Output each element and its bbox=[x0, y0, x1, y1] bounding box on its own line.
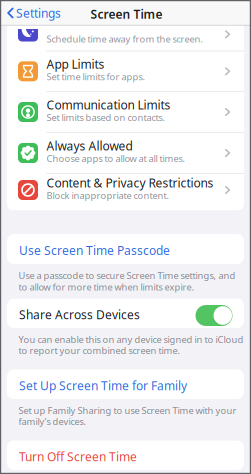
staticText: Share Across Devices bbox=[19, 307, 140, 323]
button[interactable]: Share Across Devices bbox=[195, 305, 232, 326]
staticText: Screen Time bbox=[90, 6, 162, 22]
button[interactable]: Turn Off Screen Time bbox=[7, 440, 244, 470]
button[interactable]: Use Screen Time Passcode bbox=[7, 234, 244, 264]
staticText: App Limits bbox=[46, 56, 104, 72]
button[interactable]: Set Up Screen Time for Family bbox=[7, 369, 244, 399]
button[interactable]: Always Allowed bbox=[7, 133, 244, 173]
staticText: Always Allowed bbox=[46, 138, 132, 154]
button[interactable]: App Limits bbox=[7, 51, 244, 91]
staticText: Content & Privacy Restrictions bbox=[46, 175, 213, 191]
staticText: Use Screen Time Passcode bbox=[19, 242, 170, 258]
staticText: family's devices. bbox=[18, 415, 86, 428]
button[interactable]: Schedule time away from the screen. bbox=[7, 25, 244, 50]
button[interactable]: Settings bbox=[1, 2, 63, 24]
staticText: Choose apps to allow at all times. bbox=[46, 152, 185, 165]
staticText: to allow for more time when limits expir… bbox=[18, 281, 194, 293]
staticText: Set time limits for apps. bbox=[46, 70, 145, 83]
staticText: Use a passcode to secure Screen Time set… bbox=[18, 269, 235, 282]
staticText: Communication Limits bbox=[46, 97, 170, 113]
staticText: Set up Family Sharing to use Screen Time… bbox=[18, 404, 236, 417]
staticText: Settings bbox=[16, 5, 61, 21]
staticText: to report your combined screen time. bbox=[18, 344, 180, 357]
staticText: Set limits based on contacts. bbox=[46, 111, 165, 124]
staticText: Schedule time away from the screen. bbox=[46, 33, 203, 45]
button[interactable]: Content & Privacy Restrictions bbox=[7, 170, 244, 210]
staticText: Set Up Screen Time for Family bbox=[19, 378, 187, 393]
button[interactable]: Communication Limits bbox=[7, 92, 244, 132]
staticText: Block inappropriate content. bbox=[46, 189, 169, 202]
staticText: You can enable this on any device signed… bbox=[18, 333, 243, 346]
staticText: Turn Off Screen Time bbox=[19, 449, 137, 464]
